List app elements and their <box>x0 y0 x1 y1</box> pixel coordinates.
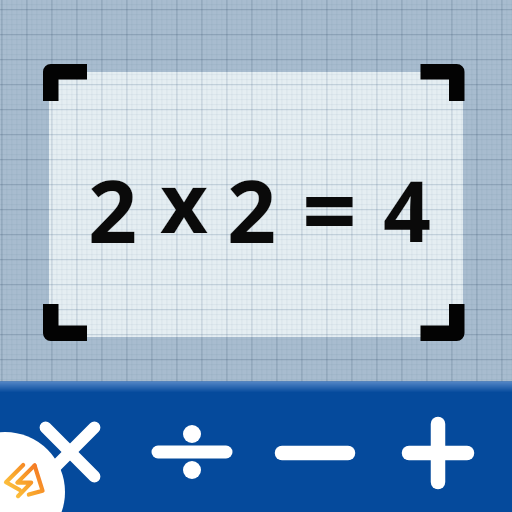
button[interactable]: Subtract <box>257 395 373 511</box>
button[interactable]: Multiply <box>12 394 128 510</box>
staticText: 4 <box>383 152 432 266</box>
button[interactable]: Add <box>380 395 496 511</box>
button[interactable]: App logo <box>0 432 65 512</box>
staticText: x <box>160 144 208 257</box>
staticText: 2 <box>227 151 277 268</box>
button[interactable]: Divide <box>134 394 250 510</box>
staticText: 2 <box>88 151 138 268</box>
staticText: = <box>302 143 357 274</box>
